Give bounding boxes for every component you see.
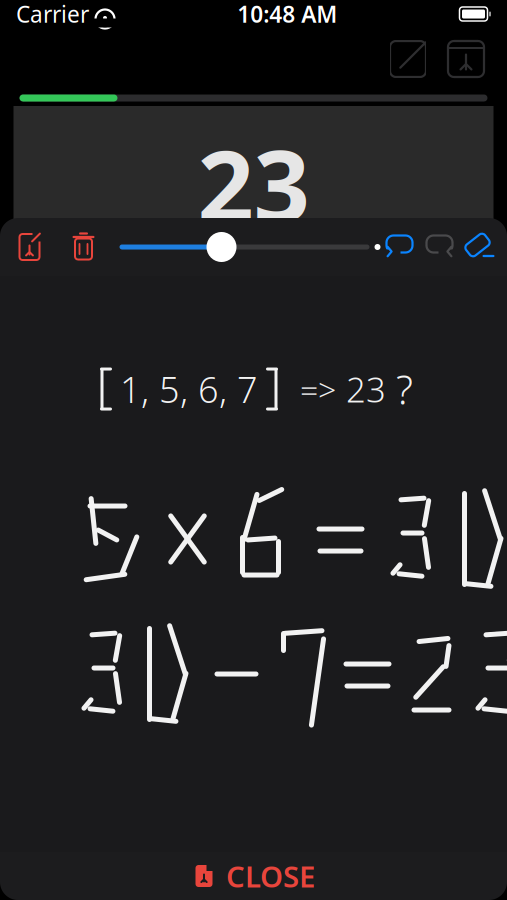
staticText: 6,	[198, 365, 227, 413]
button[interactable]: Clear drawing	[61, 225, 105, 269]
staticText: 23	[346, 366, 386, 412]
staticText: Carrier	[16, 0, 89, 29]
button[interactable]: Redo	[419, 227, 459, 267]
staticText: 10:48 AM	[237, 0, 337, 29]
staticText: 1,	[120, 365, 149, 413]
staticText: 5,	[159, 365, 188, 413]
button[interactable]: Import	[443, 36, 489, 82]
staticText: 23	[197, 118, 309, 249]
button[interactable]: Save drawing	[7, 225, 51, 269]
staticText: 7	[237, 365, 258, 413]
button[interactable]: CLOSE	[170, 846, 337, 900]
button[interactable]: Undo	[379, 227, 419, 267]
staticText: =>	[300, 368, 336, 410]
button[interactable]: Eraser	[459, 227, 499, 267]
staticText: CLOSE	[226, 856, 315, 895]
staticText: ?	[396, 362, 413, 415]
button[interactable]: Compose	[385, 36, 431, 82]
